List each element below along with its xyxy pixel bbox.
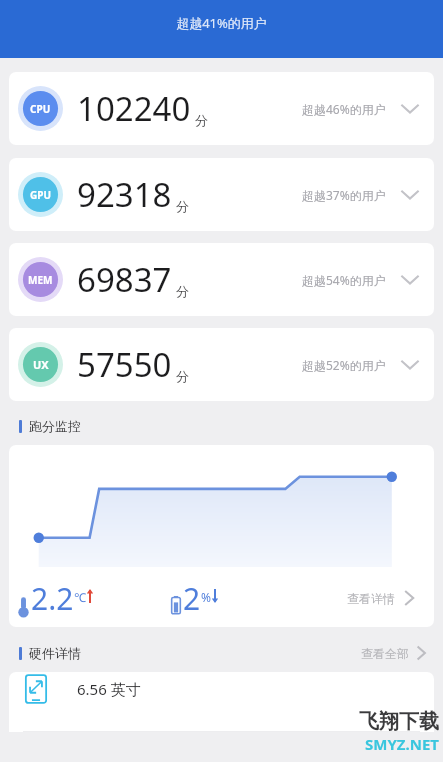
staticText: 查看全部	[361, 646, 409, 661]
staticText: 硬件详情	[29, 645, 81, 661]
other: Expand	[396, 186, 424, 204]
staticText: MEM	[28, 273, 53, 287]
staticText: 69837	[77, 257, 172, 302]
other: More	[400, 586, 420, 610]
staticText: CPU	[30, 102, 51, 116]
staticText: 2	[183, 578, 201, 619]
staticText: GPU	[30, 188, 52, 202]
staticText: 超越46%的用户	[302, 101, 386, 117]
staticText: 102240	[77, 86, 191, 131]
button[interactable]: 查看全部	[361, 642, 431, 664]
other: Expand	[396, 271, 424, 289]
staticText: ℃	[74, 589, 86, 605]
staticText: %	[201, 589, 211, 605]
button[interactable]: UX	[9, 328, 434, 401]
other: More	[413, 642, 431, 664]
staticText: 分	[195, 112, 208, 128]
staticText: 超越41%的用户	[176, 14, 267, 32]
staticText: 57550	[77, 342, 172, 387]
staticText: 跑分监控	[29, 418, 81, 434]
staticText: 超越37%的用户	[302, 187, 386, 203]
staticText: 分	[176, 368, 189, 384]
other: Expand	[396, 100, 424, 118]
button[interactable]: GPU	[9, 158, 434, 231]
staticText: UX	[33, 357, 49, 372]
staticText: SMYZ.NET	[365, 734, 439, 754]
button[interactable]: Screen size	[9, 672, 434, 732]
staticText: 查看详情	[347, 591, 395, 606]
staticText: 分	[176, 283, 189, 299]
other: Screen size	[23, 672, 49, 706]
button[interactable]: CPU	[9, 72, 434, 145]
button[interactable]: 查看详情	[343, 582, 424, 614]
button[interactable]: MEM	[9, 243, 434, 316]
other: Expand	[396, 356, 424, 374]
staticText: 2.2	[31, 578, 74, 619]
staticText: 6.56 英寸	[77, 679, 141, 699]
staticText: 超越52%的用户	[302, 357, 386, 373]
staticText: 超越54%的用户	[302, 272, 386, 288]
staticText: 飞翔下载	[359, 709, 439, 734]
staticText: 分	[176, 198, 189, 214]
staticText: 92318	[77, 172, 172, 217]
